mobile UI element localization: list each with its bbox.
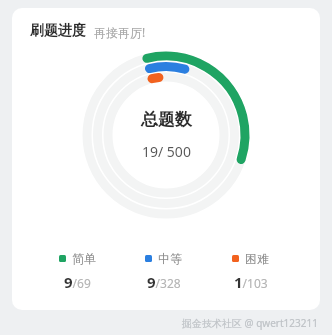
- other: 困难: [232, 255, 239, 262]
- staticText: 掘金技术社区 @ qwert123211: [182, 316, 318, 330]
- other: 简单: [59, 255, 66, 262]
- staticText: 1/103: [234, 272, 268, 292]
- staticText: 总题数: [141, 109, 192, 130]
- other: 中等: [145, 255, 152, 262]
- button[interactable]: 中等: [120, 251, 207, 292]
- staticText: 9/328: [147, 272, 181, 292]
- staticText: 刷题进度: [30, 22, 86, 40]
- staticText: 19/ 500: [142, 142, 191, 161]
- button[interactable]: 刷题进度: [30, 22, 146, 40]
- staticText: 简单: [72, 251, 96, 266]
- button[interactable]: 简单: [34, 251, 120, 292]
- staticText: 困难: [245, 251, 269, 266]
- staticText: 9/69: [64, 272, 91, 292]
- staticText: 再接再厉!: [94, 24, 146, 40]
- button[interactable]: 总题数: [78, 47, 254, 223]
- button[interactable]: 困难: [207, 251, 294, 292]
- staticText: 中等: [158, 251, 182, 266]
